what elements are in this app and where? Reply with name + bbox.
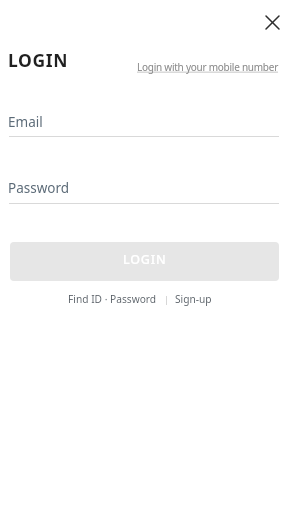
staticText: Login with your mobile number	[137, 60, 279, 74]
button[interactable]: Find ID · Password	[68, 292, 157, 306]
button[interactable]: Sign-up	[175, 292, 212, 306]
button[interactable]: Login with your mobile number	[137, 60, 279, 74]
staticText: |	[164, 293, 170, 306]
staticText: Password	[8, 179, 70, 197]
staticText: LOGIN	[123, 251, 167, 268]
button[interactable]: Email	[8, 110, 278, 136]
staticText: Email	[8, 113, 43, 131]
button[interactable]	[256, 6, 289, 39]
button[interactable]: Password	[8, 177, 278, 203]
staticText: Sign-up	[175, 292, 212, 306]
staticText: LOGIN	[8, 48, 68, 72]
staticText: Find ID · Password	[68, 292, 157, 306]
